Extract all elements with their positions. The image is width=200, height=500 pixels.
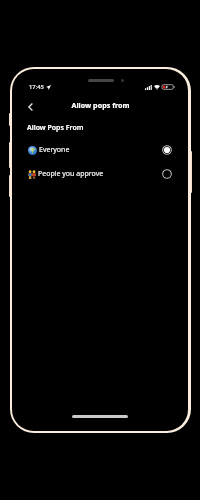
button[interactable]: Back xyxy=(20,97,40,117)
staticText: People you approve xyxy=(38,169,104,179)
button[interactable]: Everyone xyxy=(12,139,188,161)
staticText: Allow Pops From xyxy=(27,123,84,133)
staticText: Everyone xyxy=(39,145,70,155)
staticText: Allow pops from xyxy=(71,100,130,110)
staticText: 17:45 xyxy=(29,83,44,91)
button[interactable]: People you approve xyxy=(12,163,188,185)
